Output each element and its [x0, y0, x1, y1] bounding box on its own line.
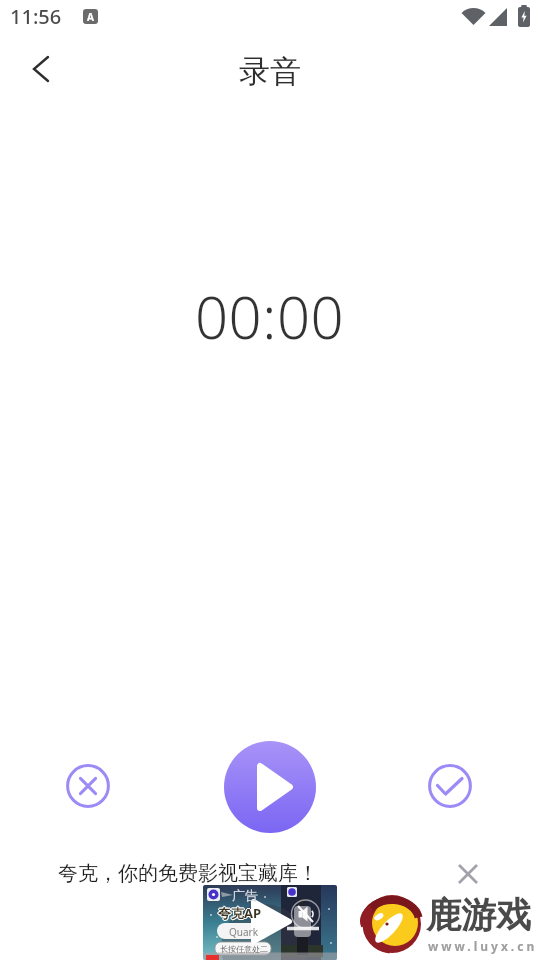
staticText: 夸克AP — [219, 904, 263, 922]
button[interactable] — [20, 50, 60, 90]
staticText: 鹿游戏 — [426, 893, 531, 937]
staticText: 11:56 — [10, 3, 62, 30]
staticText: A — [87, 10, 94, 24]
button[interactable]: 广告 — [203, 885, 337, 960]
button[interactable] — [428, 764, 472, 808]
staticText: 夸克AP — [217, 904, 261, 922]
staticText: 00:00 — [195, 277, 345, 356]
staticText: 夸克AP — [218, 903, 262, 921]
staticText: Quark — [229, 925, 259, 939]
staticText: 录音 — [239, 52, 301, 91]
button[interactable]: 夸克，你的免费影视宝藏库！ — [58, 861, 318, 886]
button[interactable] — [66, 764, 110, 808]
staticText: www.luyx.cn — [428, 938, 538, 954]
button[interactable] — [452, 858, 484, 890]
staticText: 广告 — [232, 887, 258, 903]
staticText: 长按任意处二 — [220, 944, 268, 954]
staticText: 夸克AP — [218, 904, 262, 922]
button[interactable] — [224, 741, 316, 833]
staticText: 夸克AP — [218, 905, 262, 923]
